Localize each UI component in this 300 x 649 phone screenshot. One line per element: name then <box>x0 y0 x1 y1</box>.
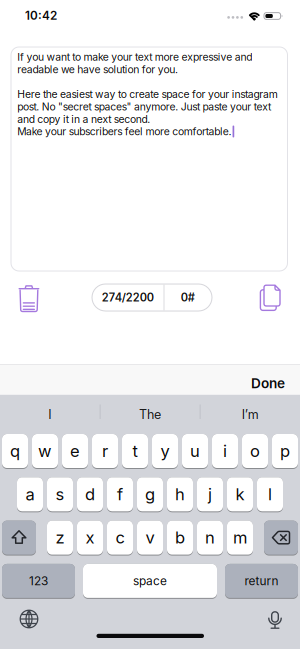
staticText: t <box>132 441 137 461</box>
staticText: d <box>85 484 95 504</box>
staticText: p <box>280 441 290 461</box>
staticText: a <box>25 484 34 504</box>
staticText: and copy it in a next second. <box>17 113 150 125</box>
staticText: post. No "secret spaces" anymore. Just p… <box>17 100 271 113</box>
staticText: l <box>268 484 272 504</box>
button[interactable]: k <box>227 477 253 512</box>
button[interactable]: p <box>272 434 298 469</box>
button[interactable]: The <box>100 395 200 434</box>
staticText: Make your subscribers feel more comforta… <box>17 125 231 138</box>
button[interactable]: f <box>107 477 133 512</box>
button[interactable]: Dictation <box>260 604 290 634</box>
staticText: return <box>244 574 278 588</box>
staticText: z <box>55 528 64 548</box>
staticText: 10:42 <box>25 8 57 23</box>
staticText: x <box>85 528 94 548</box>
staticText: n <box>205 528 215 548</box>
staticText: e <box>70 441 80 461</box>
staticText: Here the easiest way to create space for… <box>17 88 278 100</box>
button[interactable]: I’m <box>200 395 300 434</box>
button[interactable]: Shift <box>2 521 36 556</box>
button[interactable]: e <box>62 434 88 469</box>
button[interactable]: Done <box>235 368 285 398</box>
button[interactable]: y <box>152 434 178 469</box>
button[interactable]: w <box>32 434 58 469</box>
button[interactable]: return <box>225 564 298 599</box>
staticText: h <box>175 484 185 504</box>
button[interactable]: v <box>137 521 163 556</box>
staticText: y <box>160 441 169 461</box>
staticText: I <box>48 407 51 422</box>
staticText: o <box>250 441 260 461</box>
button[interactable]: g <box>137 477 163 512</box>
button[interactable]: 123 <box>2 564 75 599</box>
button[interactable]: l <box>257 477 283 512</box>
button[interactable]: Next keyboard <box>14 604 44 634</box>
staticText: q <box>10 441 20 461</box>
staticText: 274/2200 <box>102 291 154 304</box>
staticText: The <box>139 407 161 422</box>
staticText: c <box>115 528 124 548</box>
button[interactable]: space <box>83 564 217 599</box>
staticText: readable we have solution for you. <box>17 63 178 76</box>
button[interactable]: Copy <box>258 283 284 313</box>
button[interactable]: n <box>197 521 223 556</box>
button[interactable]: 274/2200 <box>92 284 212 311</box>
button[interactable]: m <box>227 521 253 556</box>
staticText: If you want to make your text more expre… <box>17 51 252 63</box>
button[interactable]: t <box>122 434 148 469</box>
button[interactable]: d <box>77 477 103 512</box>
staticText: Done <box>251 375 285 392</box>
button[interactable]: j <box>197 477 223 512</box>
staticText: 123 <box>29 574 48 588</box>
staticText: v <box>145 528 154 548</box>
button[interactable]: I <box>0 395 100 434</box>
staticText: space <box>133 574 167 588</box>
staticText: I’m <box>242 407 259 422</box>
button[interactable]: Delete <box>264 521 298 556</box>
button[interactable]: a <box>17 477 43 512</box>
button[interactable]: u <box>182 434 208 469</box>
button[interactable]: z <box>47 521 73 556</box>
staticText: s <box>55 484 64 504</box>
button[interactable]: Clear text <box>17 283 43 313</box>
staticText: g <box>145 484 155 504</box>
button[interactable]: b <box>167 521 193 556</box>
button[interactable]: o <box>242 434 268 469</box>
button[interactable]: s <box>47 477 73 512</box>
button[interactable]: c <box>107 521 133 556</box>
staticText: m <box>233 528 247 548</box>
button[interactable]: q <box>2 434 28 469</box>
staticText: r <box>102 441 108 461</box>
staticText: i <box>223 441 227 461</box>
staticText: b <box>175 528 185 548</box>
staticText: 0# <box>181 291 195 304</box>
button[interactable]: r <box>92 434 118 469</box>
staticText: k <box>235 484 244 504</box>
staticText: u <box>190 441 200 461</box>
staticText: w <box>38 441 52 461</box>
button[interactable]: i <box>212 434 238 469</box>
staticText: f <box>117 484 123 504</box>
button[interactable]: h <box>167 477 193 512</box>
staticText: j <box>208 484 212 504</box>
button[interactable]: x <box>77 521 103 556</box>
